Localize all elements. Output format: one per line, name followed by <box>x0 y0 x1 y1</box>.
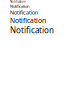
staticText: Notification <box>10 3 29 9</box>
staticText: Notification <box>10 0 26 3</box>
staticText: Notification <box>10 16 46 25</box>
staticText: Notification <box>10 25 54 35</box>
staticText: Notification <box>10 9 38 16</box>
